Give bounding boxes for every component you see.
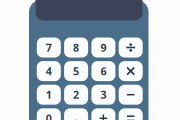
button[interactable]: 5 (64, 61, 88, 81)
button[interactable]: 9 (91, 37, 115, 57)
staticText: 0 (46, 111, 52, 120)
button[interactable]: 4 (37, 61, 61, 81)
staticText: 5 (73, 64, 79, 78)
staticText: 3 (100, 88, 106, 102)
button[interactable]: 6 (91, 61, 115, 81)
staticText: 8 (73, 40, 79, 55)
button[interactable]: 2 (64, 85, 88, 105)
staticText: 4 (46, 64, 52, 78)
button[interactable]: 1 (37, 85, 61, 105)
staticText: 1 (46, 88, 52, 102)
button[interactable]: Multiply (119, 61, 143, 81)
button[interactable]: 7 (37, 37, 61, 57)
staticText: 7 (46, 40, 52, 55)
staticText: 9 (100, 40, 106, 55)
staticText: 2 (73, 88, 79, 102)
button[interactable]: 0 (37, 108, 61, 120)
button[interactable]: Minus (119, 85, 143, 105)
button[interactable]: 3 (91, 85, 115, 105)
button[interactable]: 8 (64, 37, 88, 57)
button[interactable]: Plus (91, 108, 115, 120)
button[interactable]: Equals (119, 108, 143, 120)
button[interactable]: Decimal point (64, 108, 88, 120)
button[interactable]: Divide (119, 37, 143, 57)
staticText: 6 (100, 64, 106, 78)
